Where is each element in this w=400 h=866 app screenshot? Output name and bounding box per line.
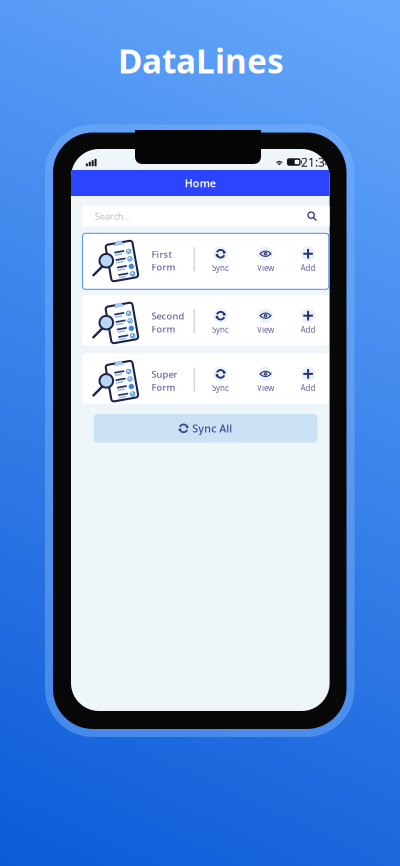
staticText: Sync [212, 262, 229, 273]
button[interactable]: First [82, 233, 329, 289]
button[interactable]: Home [71, 170, 330, 196]
button[interactable]: Sync All [94, 414, 317, 443]
staticText: Sync [212, 383, 229, 393]
button[interactable]: Super [82, 353, 329, 404]
staticText: Add [301, 324, 316, 335]
staticText: Search.. [95, 210, 130, 222]
staticText: View [257, 262, 274, 273]
staticText: Add [301, 383, 316, 393]
button[interactable]: Second [82, 295, 329, 345]
staticText: 21:34 [301, 154, 332, 170]
staticText: Form [151, 323, 175, 335]
staticText: Super [151, 368, 177, 380]
staticText: View [257, 324, 274, 335]
staticText: Form [151, 381, 175, 393]
staticText: First [151, 248, 172, 260]
staticText: Form [151, 261, 175, 273]
button[interactable]: Search.. [82, 206, 330, 226]
staticText: Second [151, 310, 184, 322]
staticText: DataLines [118, 38, 284, 83]
staticText: Sync [212, 324, 229, 335]
staticText: Add [301, 262, 316, 273]
staticText: Sync All [192, 421, 232, 435]
staticText: View [257, 383, 274, 393]
staticText: Home [185, 176, 216, 190]
